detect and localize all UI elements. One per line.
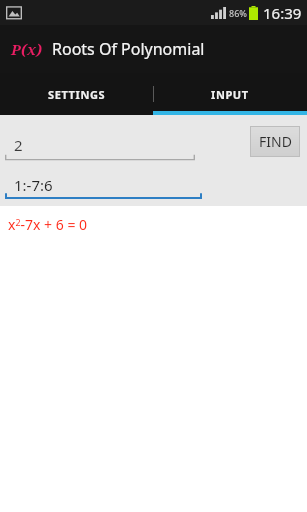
staticText: 2 xyxy=(14,135,23,155)
staticText: 16:39 xyxy=(263,3,302,23)
staticText: SETTINGS xyxy=(48,87,106,102)
button[interactable]: 1:-7:6 xyxy=(5,172,202,200)
staticText: FIND xyxy=(259,132,292,151)
staticText: x2-7x + 6 = 0 xyxy=(8,215,88,234)
staticText: 86% xyxy=(229,7,247,19)
button[interactable]: FIND xyxy=(251,127,299,156)
staticText: Roots Of Polynomial xyxy=(52,38,205,60)
button[interactable]: SETTINGS xyxy=(0,73,153,115)
button[interactable]: INPUT xyxy=(153,73,307,115)
staticText: 1:-7:6 xyxy=(14,175,53,195)
button[interactable]: 2 xyxy=(5,131,195,161)
other: Screenshot notification xyxy=(6,5,22,21)
staticText: INPUT xyxy=(211,87,249,102)
staticText: P(x) xyxy=(11,39,43,59)
